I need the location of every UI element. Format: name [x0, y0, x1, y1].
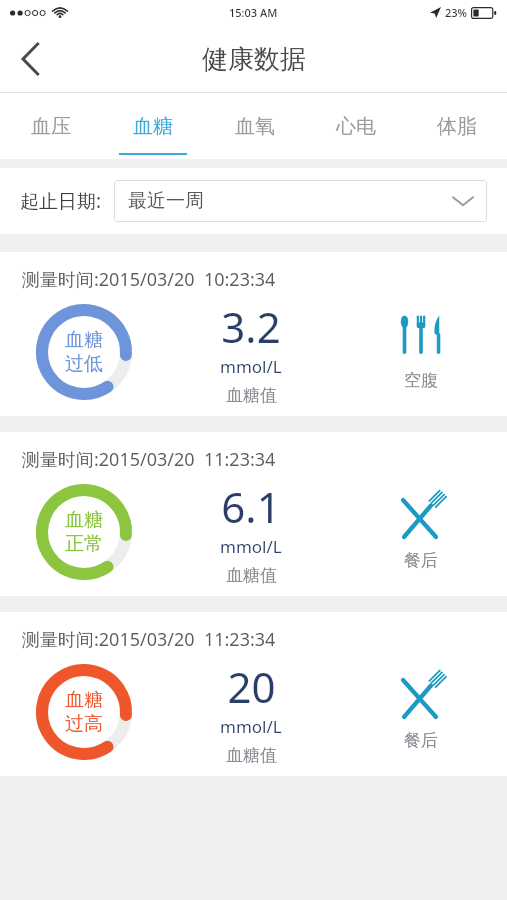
button[interactable]: 血糖 — [102, 93, 204, 159]
staticText: 体脂 — [437, 114, 477, 139]
staticText: 血糖值 — [226, 745, 277, 766]
staticText: 23% — [445, 5, 467, 20]
other: 餐后 — [396, 673, 446, 723]
button[interactable]: 最近一周 — [114, 180, 487, 222]
button[interactable]: 血氧 — [204, 93, 305, 159]
button[interactable]: 心电 — [305, 93, 406, 159]
button[interactable]: 测量时间:2015/03/20 11:23:34 — [0, 612, 507, 776]
staticText: 血糖 — [65, 328, 103, 352]
staticText: 血压 — [31, 114, 71, 139]
button[interactable]: 测量时间:2015/03/20 11:23:34 — [0, 432, 507, 596]
staticText: 心电 — [336, 114, 376, 139]
staticText: 6.1 — [221, 478, 281, 535]
staticText: 20 — [227, 658, 276, 715]
staticText: 空腹 — [404, 370, 438, 391]
staticText: mmol/L — [220, 355, 282, 378]
staticText: 血氧 — [235, 114, 275, 139]
staticText: 餐后 — [404, 550, 438, 571]
staticText: 过高 — [65, 712, 103, 736]
staticText: 血糖值 — [226, 565, 277, 586]
staticText: 血糖值 — [226, 385, 277, 406]
staticText: 3.2 — [221, 298, 281, 355]
staticText: 餐后 — [404, 730, 438, 751]
staticText: mmol/L — [220, 535, 282, 558]
button[interactable]: 体脂 — [406, 93, 507, 159]
button[interactable]: 测量时间:2015/03/20 10:23:34 — [0, 252, 507, 416]
staticText: 健康数据 — [202, 43, 306, 76]
staticText: 测量时间:2015/03/20 11:23:34 — [22, 627, 276, 652]
staticText: 正常 — [65, 532, 103, 556]
staticText: 起止日期: — [20, 188, 102, 214]
staticText: 测量时间:2015/03/20 10:23:34 — [22, 267, 276, 292]
button[interactable]: 血压 — [0, 93, 102, 159]
button[interactable]: Back — [0, 29, 60, 89]
staticText: 最近一周 — [128, 189, 204, 213]
staticText: mmol/L — [220, 715, 282, 738]
other: 餐后 — [396, 493, 446, 543]
staticText: 血糖 — [65, 688, 103, 712]
staticText: 血糖 — [133, 114, 173, 139]
other: 空腹 — [396, 313, 446, 363]
staticText: 血糖 — [65, 508, 103, 532]
staticText: 15:03 AM — [229, 5, 278, 20]
staticText: 测量时间:2015/03/20 11:23:34 — [22, 447, 276, 472]
staticText: 过低 — [65, 352, 103, 376]
